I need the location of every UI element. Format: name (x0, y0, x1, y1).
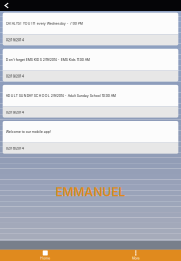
staticText: Home (40, 256, 50, 260)
staticText: CATALYST YOUTH every Wednesday - 7:00 PM (6, 21, 83, 26)
staticText: ADULT SUNDAY SCHOOL 2/9/2014 - Adult Sun… (6, 94, 116, 98)
staticText: 02/19/2014 (6, 74, 24, 78)
staticText: Welcome to our mobile app! (6, 130, 51, 134)
button[interactable]: Back (0, 0, 12, 11)
button[interactable]: Home (0, 250, 90, 261)
staticText: 02/19/2014 (6, 38, 24, 42)
button[interactable]: CATALYST YOUTH every Wednesday - 7:00 PM (3, 13, 178, 45)
button[interactable]: More (90, 250, 181, 261)
button[interactable]: Welcome to our mobile app! (3, 121, 178, 154)
staticText: EMMANUEL (55, 185, 125, 199)
button[interactable]: ADULT SUNDAY SCHOOL 2/9/2014 - Adult Sun… (3, 85, 178, 118)
staticText: More (132, 256, 140, 260)
staticText: 02/19/2014 (6, 110, 24, 114)
staticText: Don't forget EMS KIDS 2/19/2014 - EMS Ki… (6, 58, 90, 62)
staticText: 02/18/2014 (6, 146, 24, 151)
button[interactable]: Don't forget EMS KIDS 2/19/2014 - EMS Ki… (3, 49, 178, 81)
